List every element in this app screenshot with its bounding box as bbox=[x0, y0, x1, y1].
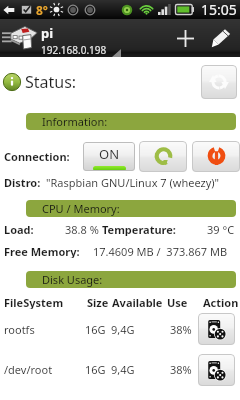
staticText: 16G bbox=[85, 362, 111, 377]
staticText: 8° bbox=[36, 2, 48, 18]
staticText: 39 °C bbox=[207, 222, 235, 236]
staticText: Temperature: bbox=[102, 222, 176, 236]
staticText: Status: bbox=[25, 71, 77, 93]
button[interactable]: Disk details bbox=[198, 354, 235, 386]
staticText: ON bbox=[99, 145, 120, 163]
button[interactable]: ON bbox=[83, 142, 135, 171]
staticText: FileSystem bbox=[4, 295, 87, 309]
button[interactable]: Edit server bbox=[202, 19, 240, 57]
staticText: 192.168.0.198 bbox=[41, 43, 107, 57]
staticText: Load: bbox=[4, 222, 65, 236]
staticText: Action bbox=[203, 295, 239, 309]
staticText: 38.8 % bbox=[65, 222, 99, 236]
staticText: 38% bbox=[170, 322, 198, 337]
staticText: "Raspbian GNU/Linux 7 (wheezy)" bbox=[46, 175, 220, 190]
button[interactable]: Shutdown bbox=[192, 141, 240, 172]
staticText: 15:05 bbox=[201, 0, 237, 19]
staticText: Use bbox=[167, 295, 203, 309]
button[interactable]: Disk details bbox=[198, 313, 235, 345]
staticText: Size bbox=[87, 295, 112, 309]
staticText: 17.4609 MB / 373.867 MB bbox=[93, 244, 228, 258]
staticText: Available bbox=[112, 295, 167, 309]
staticText: CPU / Memory: bbox=[42, 201, 120, 216]
button[interactable]: Add server bbox=[168, 19, 202, 57]
button[interactable]: Reboot bbox=[139, 141, 187, 172]
staticText: Free Memory: bbox=[4, 244, 93, 258]
staticText: 9,4G bbox=[111, 322, 170, 337]
staticText: rootfs bbox=[4, 322, 85, 337]
staticText: Disk Usage: bbox=[42, 272, 103, 287]
staticText: /dev/root bbox=[4, 362, 85, 377]
staticText: 16G bbox=[85, 322, 111, 337]
staticText: 38% bbox=[170, 362, 198, 377]
staticText: Distro: bbox=[4, 175, 41, 190]
staticText: Connection: bbox=[4, 149, 70, 164]
staticText: pi bbox=[41, 24, 54, 42]
staticText: 9,4G bbox=[111, 362, 170, 377]
button[interactable]: Refresh bbox=[201, 65, 237, 99]
staticText: Information: bbox=[42, 114, 108, 129]
